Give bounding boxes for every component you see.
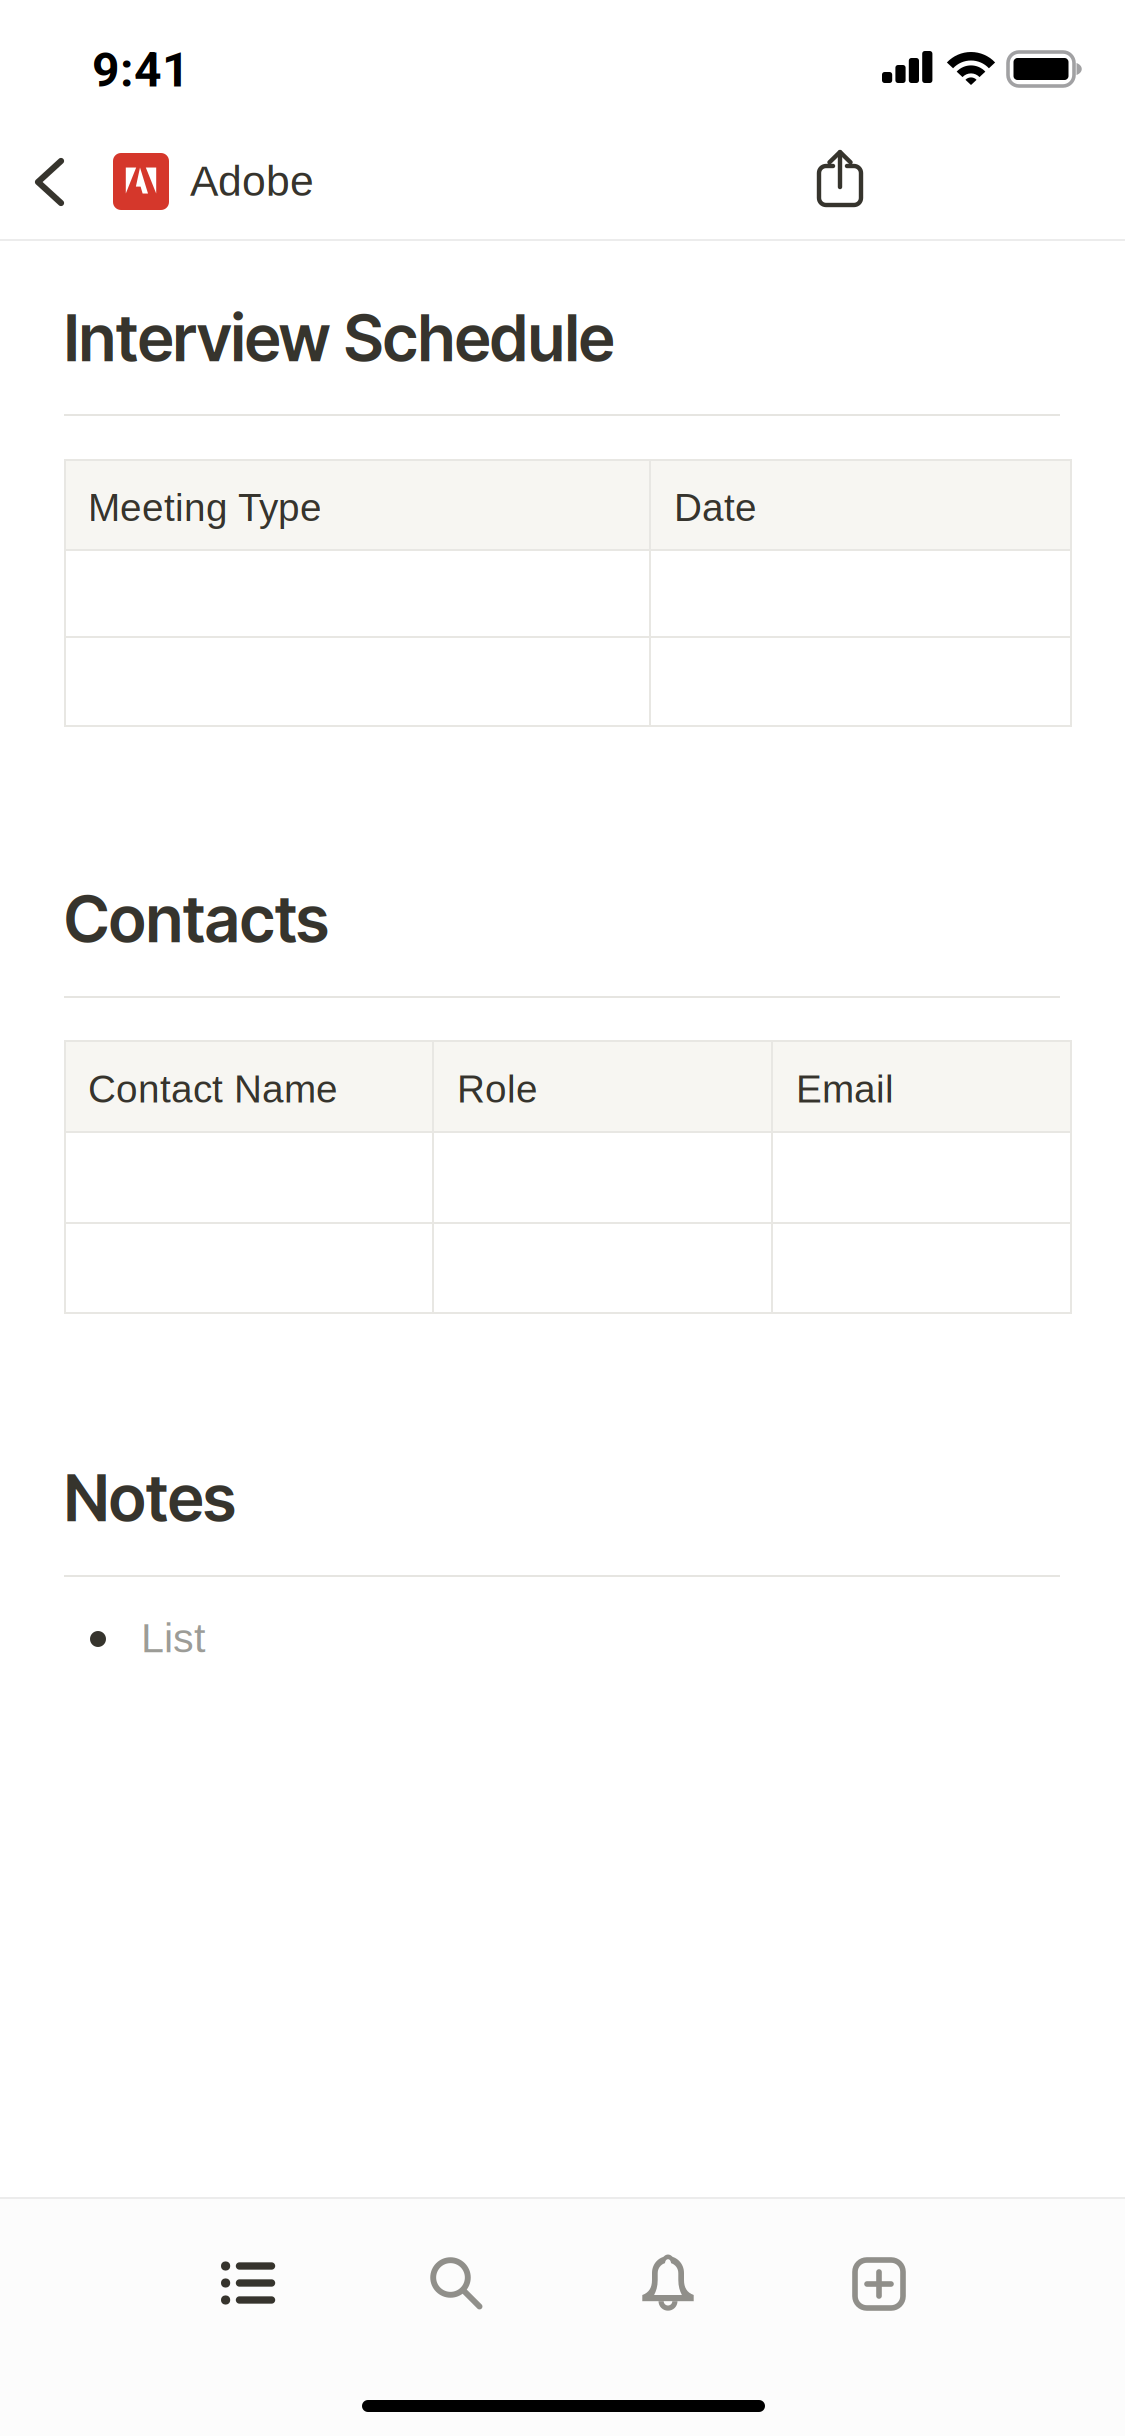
staticText: List (141, 1615, 205, 1661)
button[interactable]: List (173, 2221, 323, 2345)
button[interactable]: Back (12, 144, 100, 240)
button[interactable]: Notifications (593, 2221, 743, 2345)
staticText: Adobe (190, 157, 314, 205)
button[interactable]: Add (804, 2222, 954, 2346)
staticText: Notes (64, 1459, 236, 1537)
staticText: Contacts (64, 880, 329, 958)
button[interactable]: Search (385, 2225, 535, 2349)
staticText: Contact Name (88, 1067, 338, 1111)
staticText: Role (457, 1067, 538, 1111)
staticText: Email (796, 1067, 894, 1111)
staticText: Date (674, 486, 757, 529)
staticText: Meeting Type (88, 486, 322, 529)
staticText: Interview Schedule (64, 299, 614, 377)
button[interactable]: Share (795, 144, 891, 240)
staticText: 9:41 (92, 42, 190, 98)
